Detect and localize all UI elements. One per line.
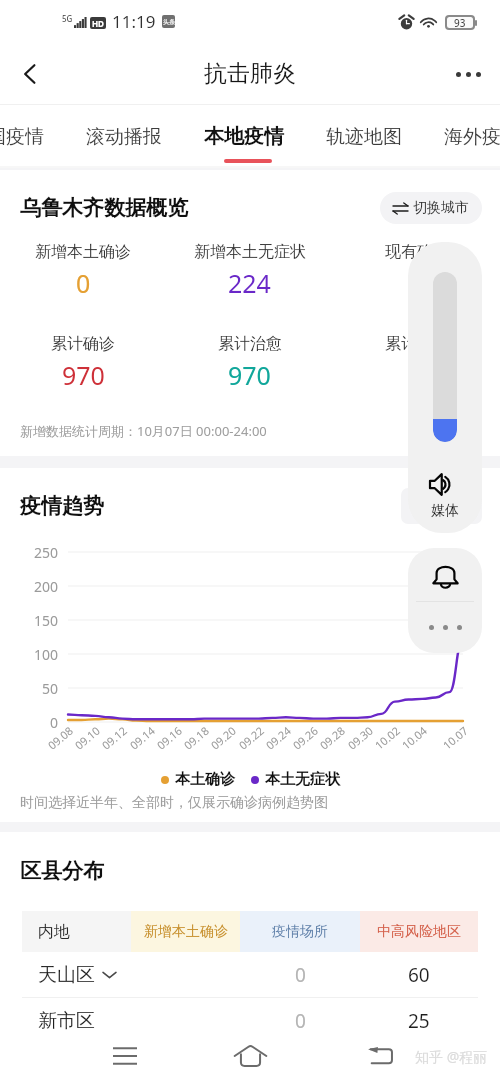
staticText: 海外疫情	[444, 125, 500, 149]
staticText: 14	[408, 1051, 430, 1077]
staticText: 970	[228, 358, 271, 392]
staticText: 抗击肺炎	[204, 59, 296, 88]
staticText: 09.10	[72, 722, 103, 752]
staticText: 新增本土无症状	[194, 242, 306, 262]
staticText: 09.16	[154, 722, 185, 752]
staticText: 知乎 @程丽	[415, 1047, 488, 1066]
staticText: 时间选择近半年、全部时，仅展示确诊病例趋势图	[20, 794, 328, 812]
staticText: 11:19	[112, 10, 156, 33]
staticText: 累计治愈	[218, 334, 282, 354]
button[interactable]: 累计治愈	[166, 334, 333, 392]
staticText: 150	[34, 611, 59, 630]
staticText: 250	[34, 543, 59, 562]
button[interactable]: 切换城市	[380, 192, 482, 224]
staticText: 09.20	[208, 722, 239, 752]
staticText: 媒体	[431, 502, 459, 520]
button[interactable]: 滚动播报	[65, 115, 183, 159]
button[interactable]: 全国疫情	[0, 115, 65, 159]
staticText: 100	[34, 645, 59, 664]
button[interactable]: 新增本土无症状	[166, 242, 333, 300]
staticText: 09.08	[45, 722, 76, 752]
button[interactable]: 30 天	[401, 488, 482, 524]
staticText: 轨迹地图	[326, 125, 402, 149]
staticText: 09.22	[236, 722, 267, 752]
staticText: 200	[34, 577, 59, 596]
staticText: 25	[408, 1008, 430, 1034]
button[interactable]: 沙依巴克区	[22, 1044, 478, 1083]
staticText: 本土无症状	[265, 770, 340, 789]
staticText: 09.24	[263, 722, 294, 752]
staticText: 区县分布	[20, 858, 104, 884]
button[interactable]: 累计确诊	[0, 334, 166, 392]
staticText: 224	[228, 266, 271, 300]
staticText: 10.02	[372, 722, 403, 752]
staticText: 10.07	[440, 722, 471, 752]
button[interactable]: Home	[226, 1032, 274, 1080]
button[interactable]: 新市区	[22, 998, 478, 1043]
staticText: 09.28	[317, 722, 348, 752]
button[interactable]: Recent apps	[101, 1032, 149, 1080]
button[interactable]: 新增本土确诊	[0, 242, 166, 300]
staticText: HD	[92, 18, 104, 29]
staticText: 切换城市	[413, 199, 469, 217]
staticText: 970	[62, 358, 105, 392]
staticText: 本地疫情	[204, 124, 284, 149]
staticText: 中高风险地区	[377, 923, 461, 941]
staticText: 60	[408, 962, 430, 988]
button[interactable]: 轨迹地图	[305, 115, 423, 159]
button[interactable]: Back	[6, 50, 54, 98]
staticText: 内地	[38, 922, 70, 942]
staticText: 本土确诊	[175, 770, 235, 789]
staticText: 10.04	[399, 722, 430, 752]
staticText: 0	[295, 1008, 306, 1034]
button[interactable]: 本地疫情	[183, 114, 305, 159]
staticText: 疫情趋势	[20, 493, 104, 519]
staticText: 天山区	[38, 963, 95, 987]
button[interactable]: Back	[356, 1032, 404, 1080]
staticText: 5G	[62, 13, 73, 24]
staticText: 93	[454, 16, 466, 30]
staticText: 新增本土确诊	[35, 242, 131, 262]
staticText: 累计确诊	[51, 334, 115, 354]
staticText: 新市区	[38, 1009, 95, 1033]
staticText: 09.18	[181, 722, 212, 752]
button[interactable]: 现有确诊	[333, 242, 500, 300]
staticText: 现有确诊	[385, 242, 449, 262]
staticText: 30 天	[415, 496, 452, 516]
staticText: 09.14	[127, 722, 158, 752]
staticText: 09.26	[290, 722, 321, 752]
staticText: 09.12	[99, 722, 130, 752]
staticText: 09.30	[345, 722, 376, 752]
button[interactable]: 天山区	[22, 952, 478, 997]
staticText: 累计死亡	[385, 334, 449, 354]
staticText: 新增本土确诊	[144, 923, 228, 941]
staticText: 全国疫情	[0, 125, 44, 149]
staticText: 50	[42, 679, 59, 698]
staticText: 新增数据统计周期：10月07日 00:00-24:00	[20, 422, 267, 440]
staticText: 0	[295, 962, 306, 988]
button[interactable]: 累计死亡	[333, 334, 500, 392]
button[interactable]: More options	[444, 50, 492, 98]
staticText: 滚动播报	[86, 125, 162, 149]
staticText: 头条	[163, 18, 175, 26]
staticText: 疫情场所	[272, 923, 328, 941]
staticText: 沙依巴克区	[38, 1044, 131, 1083]
staticText: 0	[50, 713, 59, 732]
button[interactable]: 海外疫情	[423, 115, 500, 159]
staticText: 0	[76, 266, 91, 300]
staticText: 乌鲁木齐数据概览	[20, 195, 188, 221]
